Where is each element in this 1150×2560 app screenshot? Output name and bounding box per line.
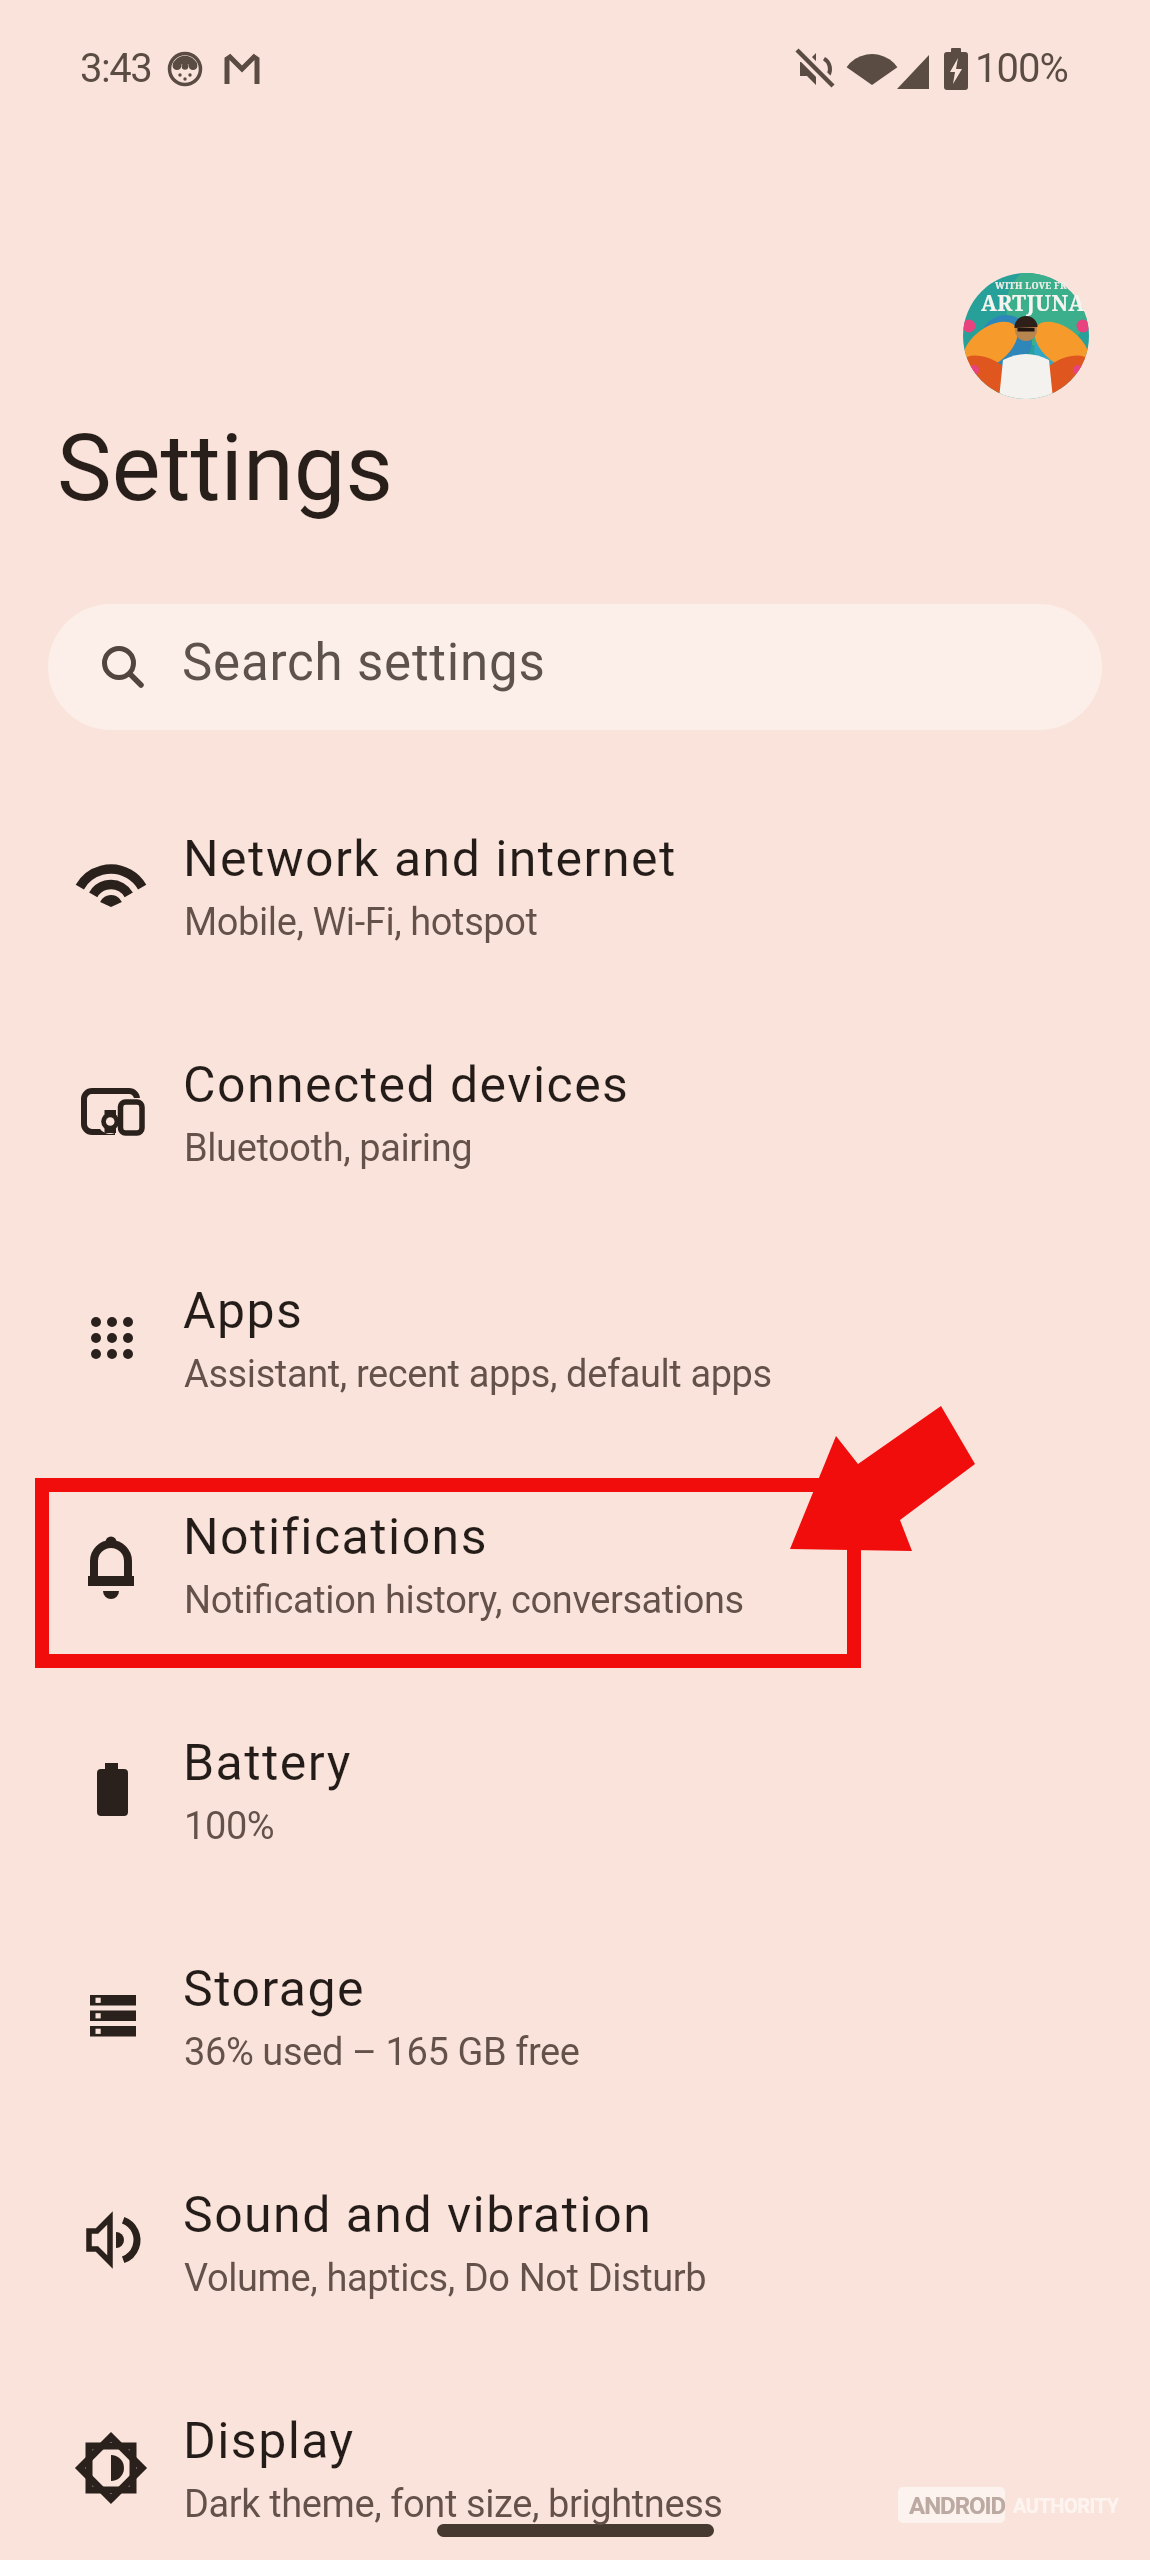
staticText: Settings	[57, 415, 393, 523]
button[interactable]	[0, 1914, 1150, 2110]
staticText: 3:43	[80, 45, 152, 92]
staticText: Battery	[183, 1734, 352, 1793]
staticText: Network and internet	[183, 830, 677, 889]
button[interactable]	[963, 273, 1089, 399]
staticText: Apps	[183, 1282, 304, 1341]
staticText: 100%	[975, 45, 1068, 92]
staticText: Bluetooth, pairing	[184, 1126, 473, 1171]
button[interactable]	[0, 1010, 1150, 1206]
staticText: Display	[183, 2412, 355, 2471]
staticText: 100%	[184, 1804, 275, 1849]
staticText: 36% used – 165 GB free	[184, 2030, 580, 2075]
button[interactable]	[0, 2140, 1150, 2336]
button[interactable]	[48, 604, 1102, 730]
staticText: Volume, haptics, Do Not Disturb	[184, 2256, 707, 2301]
staticText: Assistant, recent apps, default apps	[184, 1352, 772, 1397]
button[interactable]	[0, 2366, 1150, 2560]
button[interactable]	[0, 1236, 1150, 1432]
staticText: Dark theme, font size, brightness	[184, 2482, 723, 2527]
button[interactable]	[0, 1462, 1150, 1658]
staticText: Connected devices	[183, 1056, 630, 1115]
staticText: ANDROID	[909, 2492, 1006, 2520]
staticText: Sound and vibration	[183, 2186, 653, 2245]
staticText: Storage	[183, 1960, 365, 2019]
staticText: Notification history, conversations	[184, 1578, 744, 1623]
staticText: Notifications	[183, 1508, 488, 1567]
button[interactable]	[0, 1688, 1150, 1884]
staticText: ARTJUNA	[981, 289, 1085, 318]
staticText: WITH LOVE FR	[995, 279, 1067, 291]
staticText: Mobile, Wi-Fi, hotspot	[184, 900, 538, 945]
staticText: AUTHORITY	[1013, 2494, 1119, 2517]
button[interactable]	[0, 784, 1150, 980]
staticText: Search settings	[182, 633, 546, 693]
